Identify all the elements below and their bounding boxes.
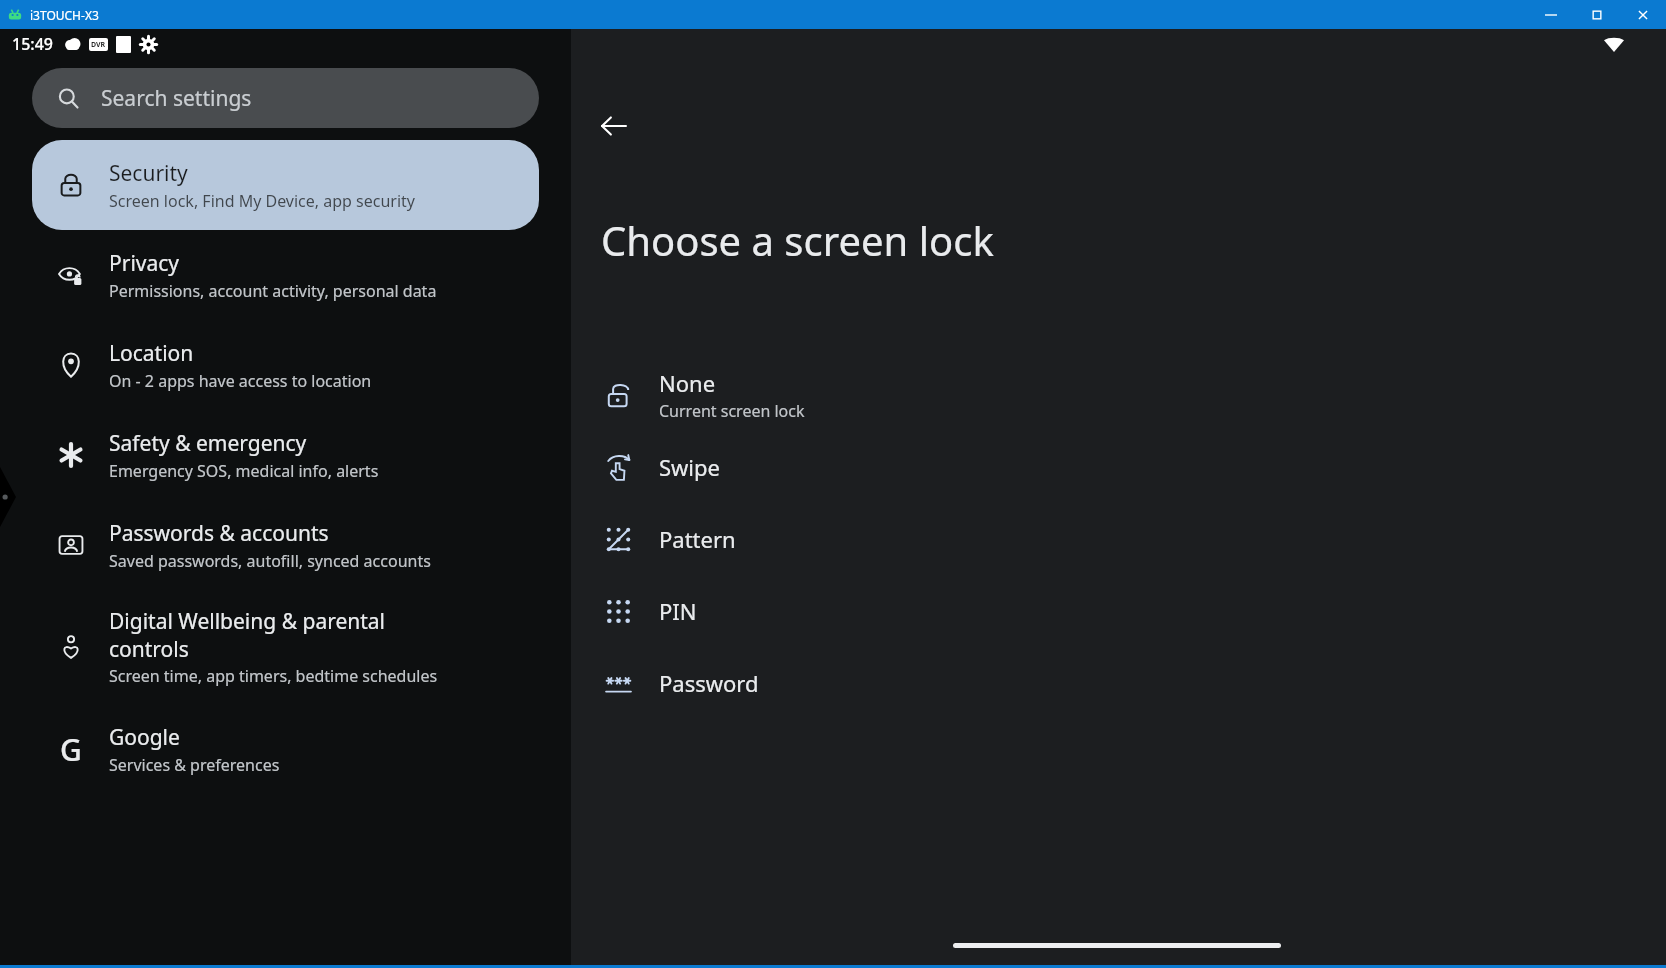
button[interactable]: Security [32, 140, 539, 230]
staticText: Current screen lock [659, 400, 805, 422]
button[interactable]: Search settings [32, 68, 539, 128]
staticText: G [60, 729, 82, 770]
staticText: None [659, 368, 716, 398]
button[interactable]: G [32, 704, 539, 794]
button[interactable]: PIN [571, 575, 1666, 647]
staticText: i3TOUCH-X3 [30, 7, 99, 23]
staticText: Password [659, 668, 759, 698]
staticText: Location [109, 339, 194, 368]
staticText: Safety & emergency [109, 429, 307, 458]
button[interactable]: Location [32, 320, 539, 410]
staticText: Privacy [109, 249, 180, 278]
staticText: PIN [659, 596, 697, 626]
staticText: Emergency SOS, medical info, alerts [109, 460, 379, 482]
button[interactable]: Digital Wellbeing & parental controls [32, 590, 539, 704]
button[interactable]: Minimize [1528, 0, 1574, 29]
button[interactable]: Back [587, 99, 641, 153]
button[interactable]: Maximize [1574, 0, 1620, 29]
staticText: Search settings [101, 84, 252, 113]
staticText: Passwords & accounts [109, 519, 329, 548]
staticText: 15:49 [12, 33, 53, 55]
staticText: Choose a screen lock [601, 213, 994, 267]
button[interactable]: Safety & emergency [32, 410, 539, 500]
staticText: Security [109, 159, 188, 188]
staticText: Screen lock, Find My Device, app securit… [109, 190, 416, 212]
staticText: Permissions, account activity, personal … [109, 280, 437, 302]
staticText: Google [109, 723, 180, 752]
button[interactable]: Close [1620, 0, 1666, 29]
staticText: DVR [91, 40, 106, 50]
button[interactable]: Home [953, 943, 1281, 948]
button[interactable]: Pattern [571, 503, 1666, 575]
staticText: Services & preferences [109, 754, 280, 776]
staticText: Screen time, app timers, bedtime schedul… [109, 665, 438, 687]
button[interactable]: Password [571, 647, 1666, 719]
button[interactable]: Privacy [32, 230, 539, 320]
button[interactable]: Swipe [571, 431, 1666, 503]
staticText: Digital Wellbeing & parental controls [109, 607, 386, 663]
staticText: Pattern [659, 524, 736, 554]
staticText: Swipe [659, 452, 720, 482]
staticText: Saved passwords, autofill, synced accoun… [109, 550, 431, 572]
button[interactable]: None [571, 359, 1666, 431]
staticText: On - 2 apps have access to location [109, 370, 372, 392]
button[interactable]: Passwords & accounts [32, 500, 539, 590]
